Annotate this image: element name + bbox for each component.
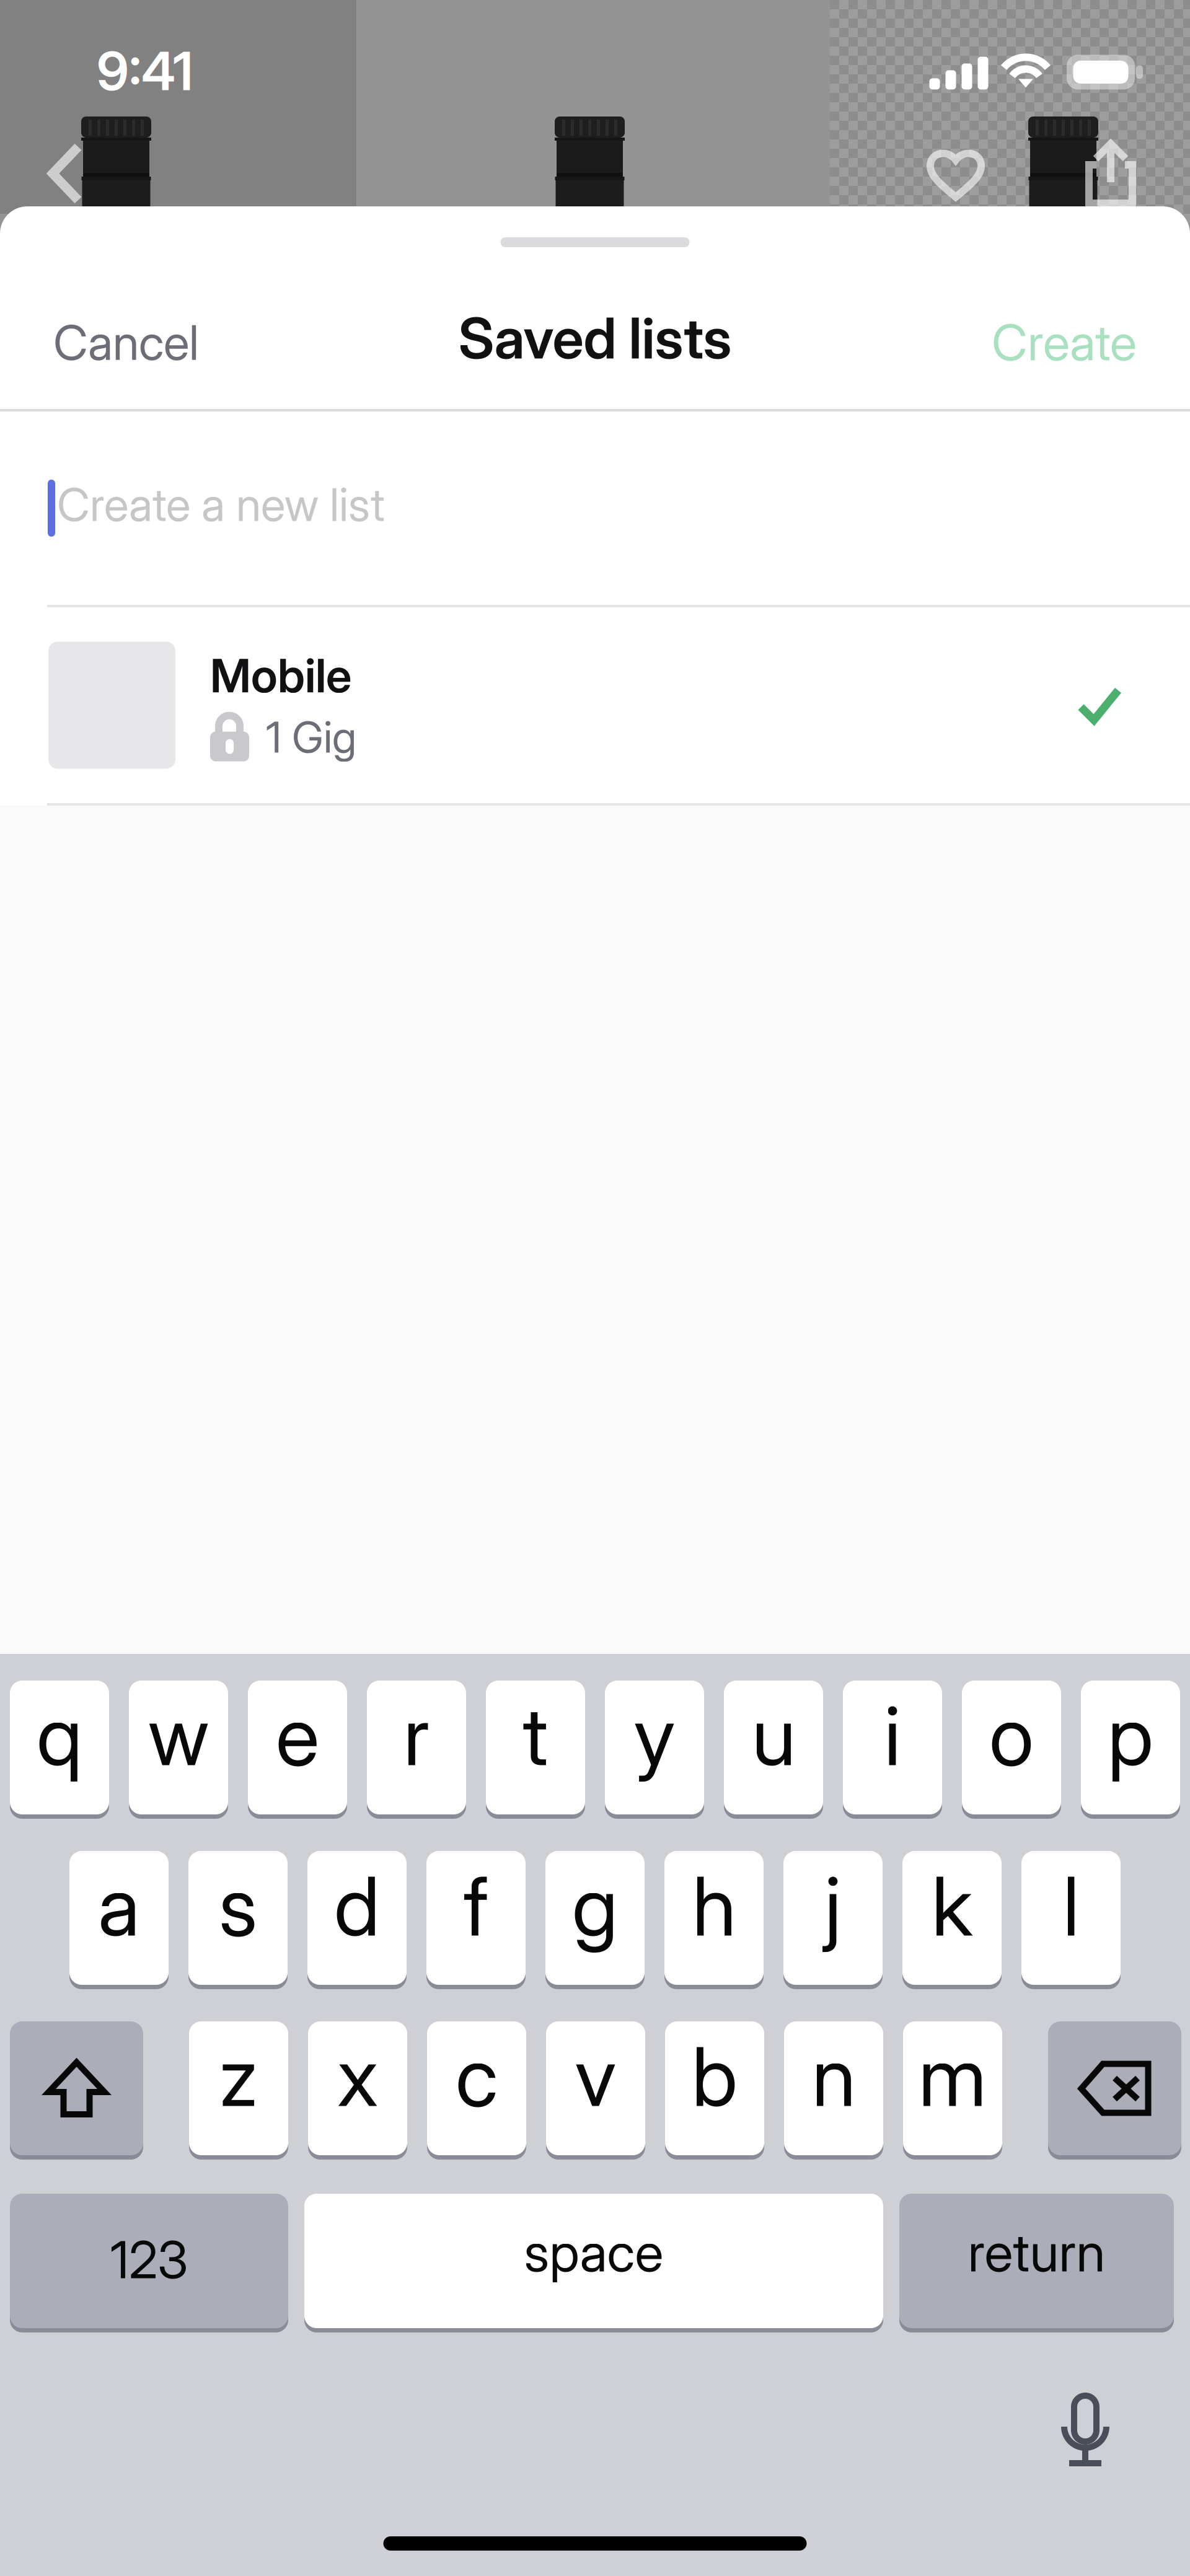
button[interactable]: d: [307, 1851, 407, 1989]
button[interactable]: 123: [10, 2194, 288, 2332]
button[interactable]: v: [546, 2021, 645, 2160]
button[interactable]: Shift: [10, 2021, 143, 2160]
button[interactable]: j: [783, 1851, 883, 1989]
button[interactable]: return: [899, 2194, 1174, 2332]
staticText: g: [572, 1857, 618, 1955]
button[interactable]: g: [545, 1851, 645, 1989]
button[interactable]: t: [486, 1681, 585, 1819]
button[interactable]: a: [69, 1851, 169, 1989]
staticText: q: [37, 1687, 82, 1785]
button[interactable]: Favourite: [910, 127, 1003, 220]
button[interactable]: u: [724, 1681, 823, 1819]
staticText: Create a new list: [57, 477, 385, 532]
staticText: b: [692, 2028, 738, 2125]
staticText: z: [219, 2028, 258, 2125]
staticText: m: [919, 2028, 987, 2125]
button[interactable]: m: [903, 2021, 1002, 2160]
staticText: h: [692, 1857, 736, 1955]
button[interactable]: Cancel: [53, 296, 214, 389]
staticText: Create: [992, 312, 1137, 372]
button[interactable]: Create: [976, 296, 1137, 389]
staticText: a: [98, 1857, 140, 1955]
button[interactable]: z: [189, 2021, 288, 2160]
button[interactable]: Back: [26, 127, 107, 220]
staticText: k: [932, 1857, 972, 1955]
staticText: 1 Gig: [266, 711, 356, 763]
button[interactable]: i: [843, 1681, 942, 1819]
staticText: v: [575, 2028, 616, 2125]
button[interactable]: b: [665, 2021, 764, 2160]
staticText: Cancel: [53, 313, 199, 371]
staticText: o: [989, 1687, 1034, 1785]
button[interactable]: p: [1081, 1681, 1180, 1819]
button[interactable]: Mobile: [0, 607, 1190, 803]
staticText: t: [523, 1687, 548, 1785]
staticText: space: [524, 2220, 663, 2284]
staticText: 9:41: [97, 39, 193, 103]
button[interactable]: Dictate: [1060, 2391, 1112, 2469]
staticText: y: [634, 1687, 675, 1785]
staticText: n: [812, 2028, 856, 2125]
staticText: c: [456, 2028, 498, 2125]
button[interactable]: l: [1021, 1851, 1121, 1989]
staticText: return: [968, 2220, 1105, 2284]
button[interactable]: Share: [1073, 127, 1148, 220]
staticText: l: [1063, 1857, 1079, 1955]
staticText: r: [403, 1687, 430, 1785]
button[interactable]: q: [10, 1681, 109, 1819]
staticText: j: [825, 1857, 841, 1955]
button[interactable]: k: [902, 1851, 1002, 1989]
button[interactable]: h: [664, 1851, 764, 1989]
staticText: e: [276, 1687, 319, 1785]
staticText: Mobile: [210, 648, 351, 703]
button[interactable]: f: [426, 1851, 526, 1989]
button[interactable]: space: [304, 2194, 883, 2332]
staticText: s: [219, 1857, 257, 1955]
staticText: x: [337, 2028, 378, 2125]
button[interactable]: n: [784, 2021, 883, 2160]
staticText: f: [464, 1857, 488, 1955]
button[interactable]: w: [129, 1681, 228, 1819]
staticText: d: [334, 1857, 380, 1955]
button[interactable]: r: [367, 1681, 466, 1819]
button[interactable]: o: [962, 1681, 1061, 1819]
staticText: w: [148, 1687, 209, 1785]
button[interactable]: c: [427, 2021, 526, 2160]
staticText: 123: [110, 2229, 188, 2291]
staticText: Saved lists: [458, 304, 732, 372]
button[interactable]: y: [605, 1681, 704, 1819]
button[interactable]: Delete: [1048, 2021, 1181, 2160]
staticText: i: [884, 1687, 901, 1785]
button[interactable]: e: [248, 1681, 347, 1819]
staticText: p: [1108, 1687, 1153, 1785]
staticText: u: [751, 1687, 796, 1785]
button[interactable]: x: [308, 2021, 407, 2160]
button[interactable]: s: [188, 1851, 288, 1989]
